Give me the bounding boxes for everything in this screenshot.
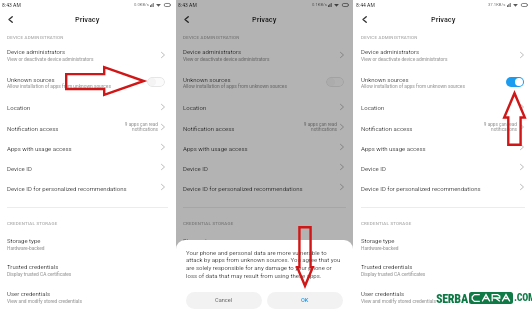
staticText: Allow installation of apps from unknown … [7, 84, 111, 90]
staticText: Allow installation of apps from unknown … [361, 84, 465, 90]
staticText: Storage type [7, 237, 41, 244]
staticText: Device ID [361, 165, 386, 172]
staticText: Hardware-backed [361, 246, 399, 252]
button[interactable]: Apps with usage access [0, 137, 175, 157]
staticText: Device ID [7, 165, 32, 172]
staticText: View and modify stored credentials [7, 299, 82, 305]
button[interactable]: Location [0, 96, 175, 117]
button[interactable]: Unknown sources toggle [326, 77, 344, 87]
button[interactable]: Notification access [354, 117, 532, 137]
button[interactable]: OK [267, 292, 343, 309]
staticText: Unknown sources [361, 76, 409, 83]
button[interactable]: Trusted credentials [354, 257, 532, 284]
button[interactable]: Unknown sources [0, 68, 175, 96]
staticText: Device ID for personalized recommendatio… [183, 185, 303, 192]
staticText: 0.0KB/s [134, 2, 149, 7]
button[interactable]: Storage type [354, 231, 532, 257]
button[interactable]: Location [354, 96, 532, 117]
staticText: View or deactivate device administrators [361, 57, 448, 63]
staticText: Device ID for personalized recommendatio… [361, 185, 481, 192]
staticText: Privacy [431, 15, 456, 24]
staticText: Device ID [183, 165, 208, 172]
staticText: Apps with usage access [183, 145, 248, 152]
staticText: View or deactivate device administrators [183, 57, 270, 63]
staticText: DEVICE ADMINISTRATION [183, 35, 240, 40]
staticText: Apps with usage access [7, 145, 72, 152]
button[interactable]: Unknown sources toggle [147, 77, 165, 87]
staticText: Notification access [361, 125, 413, 132]
button[interactable]: Back [179, 13, 193, 26]
button[interactable]: Device administrators [176, 42, 353, 68]
staticText: Storage type [361, 237, 395, 244]
button[interactable]: User credentials [354, 284, 532, 310]
staticText: CREDENTIAL STORAGE [7, 221, 58, 226]
staticText: SERBA [436, 292, 468, 304]
staticText: 0.1KB/s [312, 2, 327, 7]
button[interactable]: Trusted credentials [0, 257, 175, 284]
staticText: DEVICE ADMINISTRATION [7, 35, 64, 40]
button[interactable]: Device ID for personalized recommendatio… [354, 177, 532, 197]
button[interactable]: Device ID [176, 157, 353, 177]
staticText: User credentials [361, 290, 405, 297]
staticText: Unknown sources [7, 76, 55, 83]
staticText: DEVICE ADMINISTRATION [361, 35, 418, 40]
staticText: Allow installation of apps from unknown … [183, 84, 287, 90]
staticText: 9 apps can read notifications [481, 122, 517, 132]
button[interactable]: Device ID [354, 157, 532, 177]
button[interactable]: User credentials [0, 284, 175, 310]
staticText: 37.1KB/s [488, 2, 506, 7]
button[interactable]: Notification access [0, 117, 175, 137]
staticText: View or deactivate device administrators [7, 57, 94, 63]
staticText: Device administrators [183, 48, 242, 55]
staticText: Hardware-backed [183, 246, 221, 252]
button[interactable]: Back [3, 13, 17, 26]
staticText: Notification access [183, 125, 235, 132]
button[interactable]: Trusted credentials [176, 257, 353, 284]
staticText: Device administrators [7, 48, 66, 55]
staticText: Location [361, 104, 385, 111]
button[interactable]: Device ID [0, 157, 175, 177]
staticText: 8:44 AM [356, 2, 375, 8]
staticText: Display trusted CA certificates [361, 272, 426, 278]
button[interactable]: Apps with usage access [176, 137, 353, 157]
staticText: Trusted credentials [7, 263, 59, 270]
staticText: User credentials [183, 290, 227, 297]
button[interactable]: Device administrators [0, 42, 175, 68]
button[interactable]: Cancel [186, 292, 262, 309]
staticText: CREDENTIAL STORAGE [361, 221, 412, 226]
button[interactable]: Unknown sources [176, 68, 353, 96]
staticText: 8:43 AM [2, 2, 21, 8]
staticText: 8:43 AM [178, 2, 197, 8]
staticText: Notification access [7, 125, 59, 132]
button[interactable]: User credentials [176, 284, 353, 310]
button[interactable]: Unknown sources toggle [506, 77, 524, 87]
button[interactable]: Storage type [176, 231, 353, 257]
button[interactable]: Device ID for personalized recommendatio… [0, 177, 175, 197]
staticText: Storage type [183, 237, 217, 244]
staticText: Your phone and personal data are more vu… [186, 249, 343, 280]
staticText: Privacy [75, 15, 100, 24]
button[interactable]: Location [176, 96, 353, 117]
staticText: Unknown sources [183, 76, 231, 83]
button[interactable]: Device ID for personalized recommendatio… [176, 177, 353, 197]
staticText: Device ID for personalized recommendatio… [7, 185, 127, 192]
staticText: Apps with usage access [361, 145, 426, 152]
staticText: OK [301, 297, 309, 304]
staticText: .COM [514, 292, 532, 304]
staticText: Trusted credentials [361, 263, 413, 270]
button[interactable]: Apps with usage access [354, 137, 532, 157]
staticText: Display trusted CA certificates [7, 272, 72, 278]
staticText: Cancel [215, 297, 233, 304]
staticText: 9 apps can read notifications [301, 122, 337, 132]
staticText: Location [183, 104, 207, 111]
button[interactable]: Unknown sources [354, 68, 532, 96]
staticText: 9 apps can read notifications [122, 122, 158, 132]
staticText: Location [7, 104, 31, 111]
staticText: User credentials [7, 290, 51, 297]
staticText: Privacy [252, 15, 277, 24]
staticText: Device administrators [361, 48, 420, 55]
button[interactable]: Back [357, 13, 371, 26]
button[interactable]: Notification access [176, 117, 353, 137]
button[interactable]: Storage type [0, 231, 175, 257]
button[interactable]: Device administrators [354, 42, 532, 68]
